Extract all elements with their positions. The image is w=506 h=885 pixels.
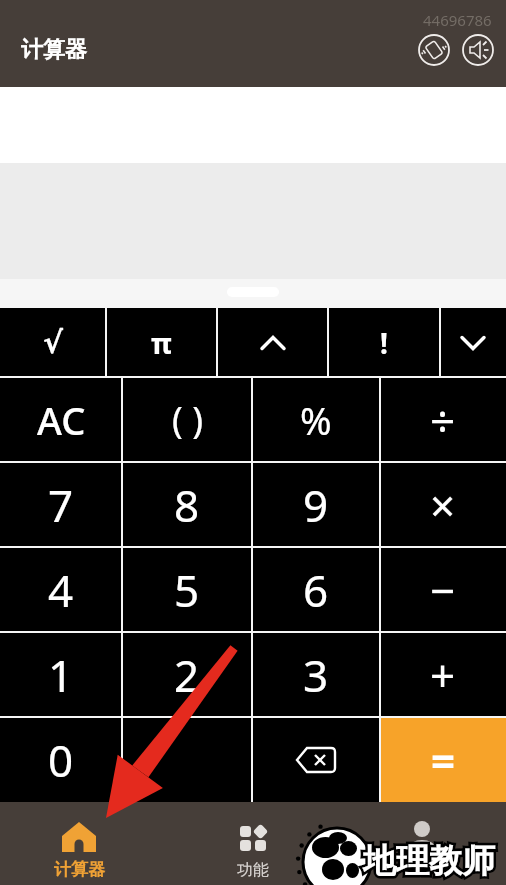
button[interactable]: ! xyxy=(328,308,440,377)
staticText: 4 xyxy=(48,560,74,620)
staticText: 6 xyxy=(303,560,329,620)
staticText: 计算器 xyxy=(21,36,87,64)
staticText: AC xyxy=(37,394,86,446)
staticText: 3 xyxy=(303,645,329,705)
button[interactable]: 9 xyxy=(252,462,380,547)
staticText: − xyxy=(430,560,456,620)
staticText: 44696786 xyxy=(423,10,492,30)
staticText: 8 xyxy=(174,475,200,535)
staticText: × xyxy=(430,475,456,535)
button[interactable]: + xyxy=(380,632,506,717)
button[interactable]: = xyxy=(380,717,506,802)
button[interactable]: AC xyxy=(0,377,122,462)
button[interactable]: π xyxy=(106,308,217,377)
staticText: 0 xyxy=(48,730,74,790)
button[interactable]: 4 xyxy=(0,547,122,632)
button[interactable]: × xyxy=(380,462,506,547)
staticText: 功能 xyxy=(237,860,269,880)
staticText: ( ) xyxy=(172,395,203,444)
staticText: 计算器 xyxy=(54,859,105,880)
staticText: = xyxy=(431,731,456,788)
staticText: 9 xyxy=(303,475,329,535)
staticText: π xyxy=(151,324,172,362)
button[interactable] xyxy=(217,308,328,377)
button[interactable]: 3 xyxy=(252,632,380,717)
button[interactable]: − xyxy=(380,547,506,632)
button[interactable]: % xyxy=(252,377,380,462)
button[interactable]: ( ) xyxy=(122,377,252,462)
button[interactable]: √ xyxy=(0,308,106,377)
staticText: 地理教师 xyxy=(363,840,495,882)
button[interactable] xyxy=(440,308,506,377)
staticText: 我的 xyxy=(406,860,438,880)
button[interactable]: 8 xyxy=(122,462,252,547)
button[interactable]: 6 xyxy=(252,547,380,632)
staticText: ÷ xyxy=(430,390,456,450)
staticText: + xyxy=(430,645,456,705)
staticText: % xyxy=(300,394,332,446)
button[interactable]: 5 xyxy=(122,547,252,632)
button[interactable] xyxy=(418,34,450,66)
staticText: 7 xyxy=(48,475,74,535)
staticText: 5 xyxy=(174,560,200,620)
staticText: 1 xyxy=(48,645,74,705)
button[interactable]: 1 xyxy=(0,632,122,717)
staticText: 地理教师 xyxy=(363,840,495,882)
button[interactable]: 2 xyxy=(122,632,252,717)
staticText: 2 xyxy=(174,645,200,705)
button[interactable]: 计算器 xyxy=(0,802,166,885)
button[interactable]: 我的 xyxy=(340,802,506,885)
staticText: √ xyxy=(43,325,64,360)
button[interactable]: 功能 xyxy=(166,802,340,885)
staticText: ! xyxy=(380,324,388,362)
button[interactable]: 7 xyxy=(0,462,122,547)
button[interactable]: 0 xyxy=(0,717,122,802)
button[interactable] xyxy=(462,34,494,66)
button[interactable]: ÷ xyxy=(380,377,506,462)
button[interactable] xyxy=(252,717,380,802)
